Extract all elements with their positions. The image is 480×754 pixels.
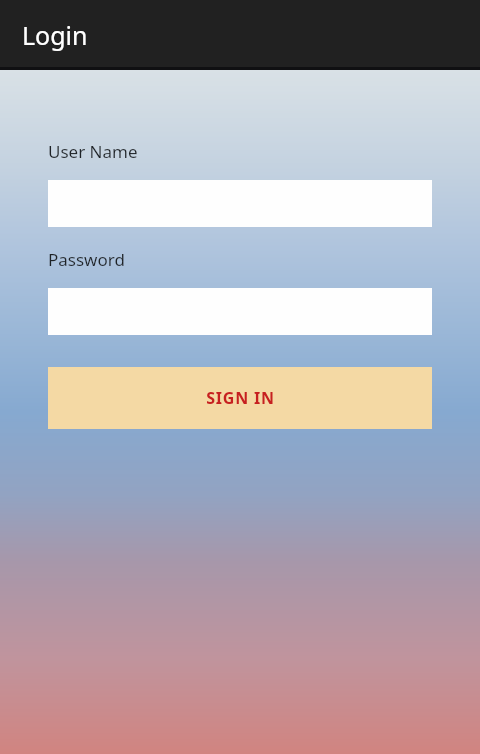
staticText: Password <box>48 248 125 271</box>
button[interactable]: SIGN IN <box>48 367 432 429</box>
staticText: SIGN IN <box>206 387 275 409</box>
staticText: Login <box>22 18 88 52</box>
staticText: User Name <box>48 140 138 163</box>
